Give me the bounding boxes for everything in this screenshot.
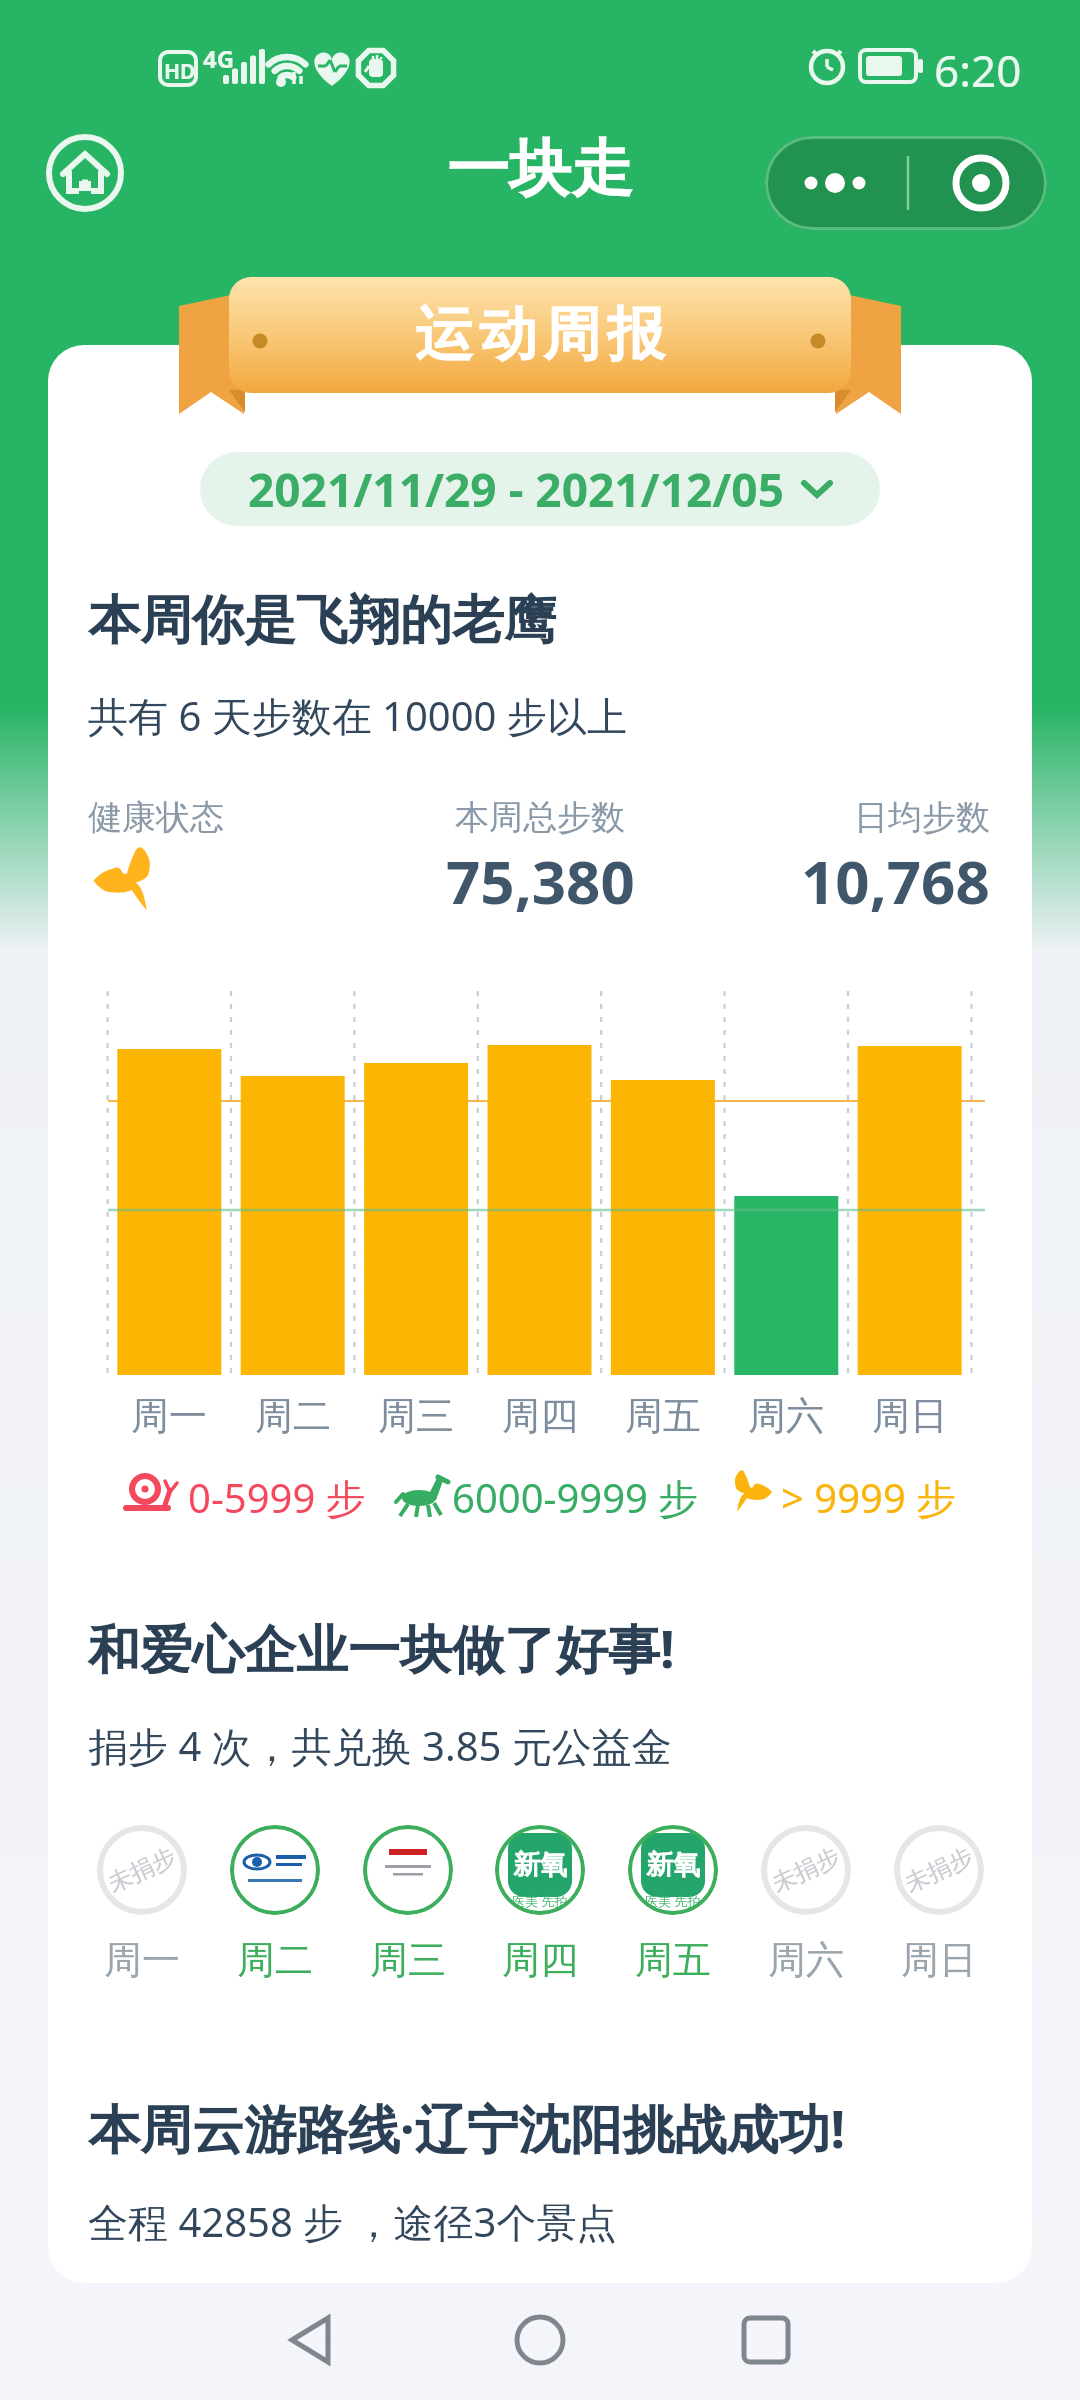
button[interactable] [230, 1825, 320, 1915]
button[interactable]: 2021/11/29 - 2021/12/05 [200, 452, 880, 526]
button[interactable] [250, 2290, 370, 2390]
button[interactable] [706, 2290, 826, 2390]
button[interactable]: 未捐步 [894, 1825, 984, 1915]
staticText: 一块走 [447, 130, 633, 208]
staticText: 周日 [901, 1936, 977, 1984]
button[interactable]: 未捐步 [761, 1825, 851, 1915]
staticText: 周五 [635, 1936, 711, 1984]
staticText: 6:20 [934, 40, 1022, 100]
staticText: 周一 [104, 1936, 180, 1984]
staticText: 全程 42858 步 ，途径3个景点 [88, 2194, 617, 2249]
staticText: 和爱心企业一块做了好事! [88, 1612, 675, 1683]
button[interactable]: 新氧 [628, 1825, 718, 1915]
button[interactable] [46, 134, 124, 212]
staticText: > 9999 步 [781, 1470, 957, 1525]
staticText: 周日 [872, 1392, 948, 1440]
staticText: 10,768 [801, 840, 990, 922]
staticText: 0-5999 步 [188, 1470, 366, 1525]
staticText: 周五 [625, 1392, 701, 1440]
staticText: 未捐步 [103, 1841, 181, 1899]
staticText: 周二 [237, 1936, 313, 1984]
staticText: 医美 先拍 [512, 1892, 568, 1910]
staticText: 周六 [748, 1392, 824, 1440]
staticText: 本周你是飞翔的老鹰 [88, 588, 556, 654]
staticText: 75,380 [446, 840, 635, 922]
staticText: 2021/11/29 - 2021/12/05 [248, 458, 784, 521]
staticText: 医美 先拍 [645, 1892, 701, 1910]
button[interactable]: 未捐步 [97, 1825, 187, 1915]
staticText: 未捐步 [900, 1841, 978, 1899]
staticText: 周三 [370, 1936, 446, 1984]
staticText: 周二 [255, 1392, 331, 1440]
button[interactable] [480, 2290, 600, 2390]
staticText: 捐步 4 次，共兑换 3.85 元公益金 [88, 1718, 672, 1773]
staticText: 本周总步数 [455, 796, 625, 839]
staticText: 运动周报 [412, 298, 668, 371]
staticText: HD [164, 57, 196, 86]
staticText: 日均步数 [854, 796, 990, 839]
staticText: 共有 6 天步数在 10000 步以上 [88, 688, 627, 743]
staticText: 未捐步 [767, 1841, 845, 1899]
staticText: 周四 [502, 1392, 578, 1440]
button[interactable] [363, 1825, 453, 1915]
staticText: 本周云游路线·辽宁沈阳挑战成功! [88, 2092, 846, 2163]
staticText: 周一 [131, 1392, 207, 1440]
button[interactable]: 新氧 [495, 1825, 585, 1915]
button[interactable] [765, 136, 1047, 230]
staticText: 周六 [768, 1936, 844, 1984]
staticText: 周四 [502, 1936, 578, 1984]
staticText: 新氧 [646, 1848, 700, 1882]
staticText: 4G [203, 42, 235, 75]
staticText: 新氧 [513, 1848, 567, 1882]
staticText: 健康状态 [88, 796, 224, 839]
staticText: 周三 [378, 1392, 454, 1440]
staticText: 6000-9999 步 [452, 1470, 699, 1525]
